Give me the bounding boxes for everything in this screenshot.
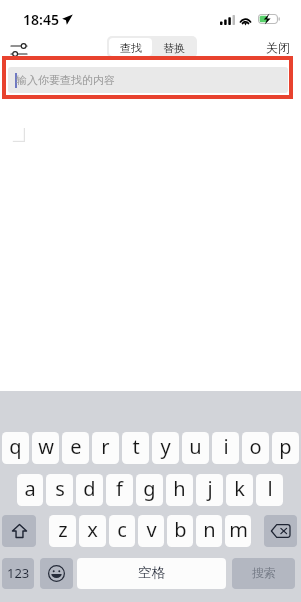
button[interactable]: Emoji (40, 558, 73, 589)
button[interactable]: n (196, 515, 222, 547)
button[interactable]: l (256, 474, 283, 506)
staticText: 18:45 (23, 10, 59, 29)
staticText: d (83, 475, 96, 502)
staticText: p (279, 433, 292, 460)
staticText: q (9, 433, 22, 460)
button[interactable]: 查找 (109, 38, 152, 56)
staticText: m (229, 516, 248, 543)
staticText: a (24, 475, 36, 502)
staticText: t (132, 433, 140, 460)
staticText: 搜索 (252, 565, 276, 580)
staticText: j (207, 475, 213, 502)
staticText: z (58, 516, 68, 543)
staticText: k (234, 475, 245, 502)
staticText: g (143, 475, 156, 502)
staticText: r (101, 433, 110, 460)
staticText: w (38, 433, 54, 460)
button[interactable]: w (32, 432, 59, 464)
button[interactable]: 空格 (77, 558, 226, 589)
staticText: v (146, 516, 157, 543)
button[interactable]: Filter options (4, 31, 33, 53)
button[interactable]: 搜索 (232, 558, 295, 589)
staticText: x (87, 516, 98, 543)
button[interactable]: Shift (2, 515, 36, 547)
staticText: h (173, 475, 186, 502)
staticText: 关闭 (266, 40, 290, 55)
button[interactable]: 输入你要查找的内容 (8, 67, 288, 93)
staticText: f (116, 475, 123, 502)
staticText: 输入你要查找的内容 (16, 73, 115, 87)
button[interactable]: t (122, 432, 149, 464)
staticText: i (223, 433, 229, 460)
staticText: l (267, 475, 273, 502)
button[interactable]: b (167, 515, 193, 547)
button[interactable]: p (272, 432, 299, 464)
button[interactable]: q (2, 432, 29, 464)
button[interactable]: h (166, 474, 193, 506)
button[interactable]: f (106, 474, 133, 506)
staticText: n (203, 516, 216, 543)
staticText: y (160, 433, 171, 460)
staticText: 123 (7, 564, 30, 582)
staticText: 替换 (163, 41, 185, 55)
button[interactable]: e (62, 432, 89, 464)
staticText: 空格 (138, 564, 165, 581)
button[interactable]: 123 (2, 558, 34, 589)
button[interactable]: k (226, 474, 253, 506)
button[interactable]: d (76, 474, 103, 506)
button[interactable]: 替换 (152, 38, 195, 56)
button[interactable]: Backspace (264, 515, 297, 547)
staticText: o (249, 433, 262, 460)
button[interactable]: 关闭 (261, 37, 294, 56)
staticText: s (55, 475, 65, 502)
button[interactable]: z (49, 515, 76, 547)
button[interactable]: i (212, 432, 239, 464)
button[interactable]: v (138, 515, 164, 547)
button[interactable]: u (182, 432, 209, 464)
button[interactable]: x (79, 515, 106, 547)
button[interactable]: y (152, 432, 179, 464)
button[interactable]: o (242, 432, 269, 464)
button[interactable]: s (46, 474, 73, 506)
button[interactable]: r (92, 432, 119, 464)
staticText: c (117, 516, 127, 543)
staticText: b (174, 516, 187, 543)
staticText: u (189, 433, 202, 460)
button[interactable]: a (17, 474, 43, 506)
button[interactable]: g (136, 474, 163, 506)
staticText: 查找 (120, 41, 142, 55)
button[interactable]: m (225, 515, 251, 547)
staticText: e (70, 433, 82, 460)
button[interactable]: c (109, 515, 135, 547)
button[interactable]: j (196, 474, 223, 506)
